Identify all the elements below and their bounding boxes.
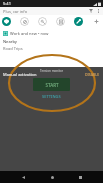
button[interactable]: Alerts: [20, 17, 29, 26]
staticText: Work and new • now: [10, 31, 49, 36]
staticText: Tension monitor: [40, 69, 64, 73]
staticText: Plus, car info: [3, 9, 28, 14]
button[interactable]: Manual activation: [3, 72, 37, 77]
staticText: START: [45, 82, 59, 88]
button[interactable]: Recent apps: [74, 171, 86, 183]
button[interactable]: More options: [95, 8, 101, 14]
button[interactable]: Location: [2, 17, 11, 26]
button[interactable]: Back: [17, 171, 29, 183]
button[interactable]: START: [33, 78, 70, 91]
staticText: SETTINGS: [42, 94, 61, 99]
button[interactable]: SETTINGS: [40, 93, 63, 100]
button[interactable]: DISABLE: [85, 72, 100, 77]
staticText: 5:41: [3, 1, 11, 6]
button[interactable]: Tools: [74, 17, 83, 26]
button[interactable]: Add: [92, 17, 101, 26]
button[interactable]: Key: [38, 17, 47, 26]
staticText: Nearby: [3, 39, 17, 44]
button[interactable]: Filter: [88, 8, 94, 14]
button[interactable]: Home: [46, 171, 58, 183]
staticText: Road Trips: [3, 46, 23, 51]
button[interactable]: Documents: [56, 17, 65, 26]
